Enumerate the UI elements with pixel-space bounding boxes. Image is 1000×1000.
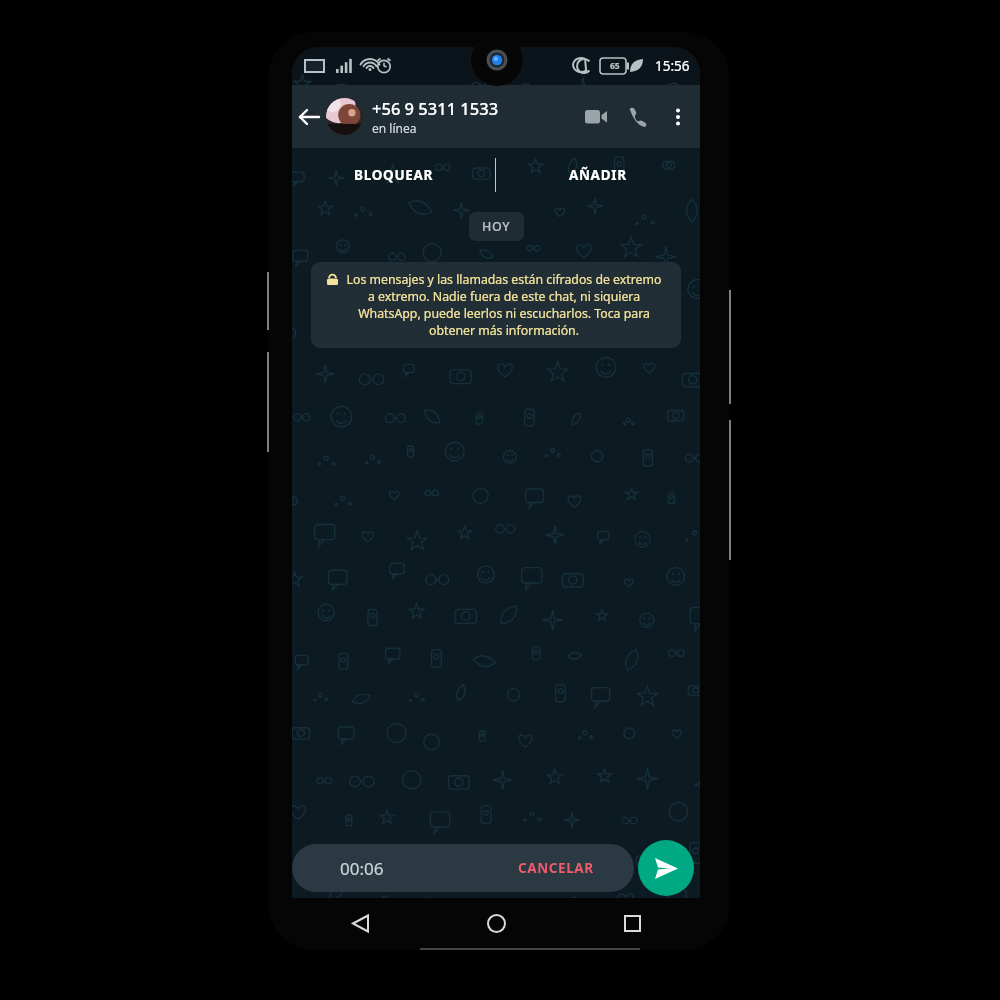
button[interactable]: Back <box>292 898 428 948</box>
button[interactable]: Los mensajes y las llamadas están cifrad… <box>311 262 681 348</box>
staticText: CANCELAR <box>518 859 594 877</box>
staticText: en línea <box>372 120 417 136</box>
button[interactable]: Video call <box>575 96 617 138</box>
button[interactable]: +56 9 5311 1533 <box>326 85 575 148</box>
staticText: +56 9 5311 1533 <box>372 97 499 119</box>
button[interactable]: Home <box>428 898 564 948</box>
staticText: 15:56 <box>655 57 690 75</box>
staticText: 00:06 <box>340 857 384 880</box>
staticText: AÑADIR <box>569 166 627 184</box>
staticText: 65 <box>610 60 620 72</box>
staticText: BLOQUEAR <box>354 166 434 184</box>
button[interactable]: Back <box>292 100 326 134</box>
staticText: Los mensajes y las llamadas están cifrad… <box>343 271 665 339</box>
button[interactable]: HOY <box>469 212 524 241</box>
button[interactable]: More options <box>659 98 697 136</box>
button[interactable]: BLOQUEAR <box>292 148 495 202</box>
button[interactable]: AÑADIR <box>496 148 700 202</box>
button[interactable]: Send <box>638 840 694 896</box>
button[interactable]: Recents <box>564 898 700 948</box>
staticText: HOY <box>482 218 511 235</box>
button[interactable]: 00:06 <box>292 844 634 892</box>
button[interactable]: Call <box>617 96 659 138</box>
